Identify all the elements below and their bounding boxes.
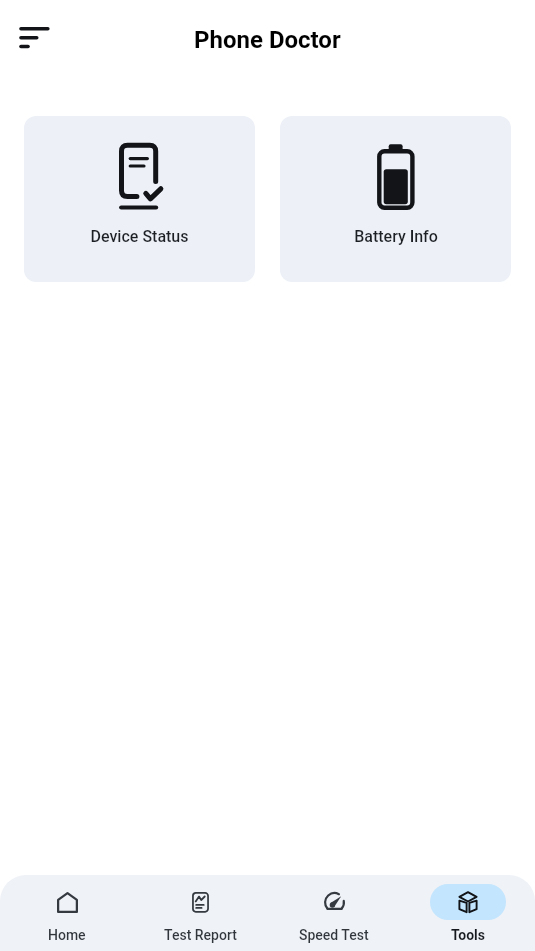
staticText: Test Report bbox=[164, 927, 237, 943]
staticText: Battery Info bbox=[354, 227, 438, 246]
button[interactable]: Device Status bbox=[24, 116, 255, 282]
button[interactable]: Tools bbox=[401, 875, 535, 943]
button[interactable]: Test Report bbox=[133, 875, 267, 943]
staticText: Tools bbox=[451, 927, 485, 943]
button[interactable]: Menu bbox=[10, 11, 58, 63]
staticText: Device Status bbox=[90, 227, 189, 246]
button[interactable]: Battery Info bbox=[280, 116, 511, 282]
staticText: Home bbox=[48, 927, 86, 943]
button[interactable]: Speed Test bbox=[267, 875, 401, 943]
staticText: Speed Test bbox=[299, 927, 369, 943]
button[interactable]: Home bbox=[0, 875, 133, 943]
staticText: Phone Doctor bbox=[194, 26, 341, 54]
